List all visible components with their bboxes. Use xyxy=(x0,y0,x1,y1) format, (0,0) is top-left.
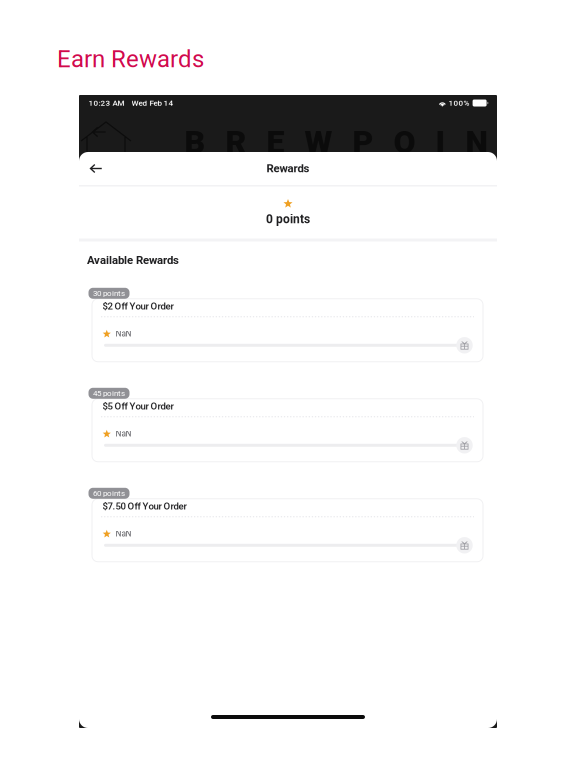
staticText: 60 points xyxy=(93,489,125,498)
button[interactable]: $5 Off Your Order xyxy=(92,384,483,456)
staticText: Earn Rewards xyxy=(57,45,204,73)
staticText: $2 Off Your Order xyxy=(102,301,173,312)
staticText: 0 points xyxy=(266,212,310,226)
staticText: 100% xyxy=(449,98,470,108)
staticText: Wed Feb 14 xyxy=(131,98,173,108)
staticText: $7.50 Off Your Order xyxy=(102,501,186,512)
button[interactable]: Back xyxy=(83,155,109,181)
staticText: NaN xyxy=(115,529,131,539)
staticText: BREWPOINT xyxy=(184,123,527,161)
staticText: Available Rewards xyxy=(87,253,179,267)
staticText: 45 points xyxy=(93,389,125,398)
staticText: NaN xyxy=(115,329,131,339)
staticText: Rewards xyxy=(266,162,309,175)
staticText: 30 points xyxy=(93,289,125,298)
staticText: NaN xyxy=(115,429,131,439)
button[interactable]: $2 Off Your Order xyxy=(92,284,483,356)
staticText: 10:23 AM xyxy=(88,98,124,108)
staticText: $5 Off Your Order xyxy=(102,401,173,412)
button[interactable]: $7.50 Off Your Order xyxy=(92,484,483,556)
